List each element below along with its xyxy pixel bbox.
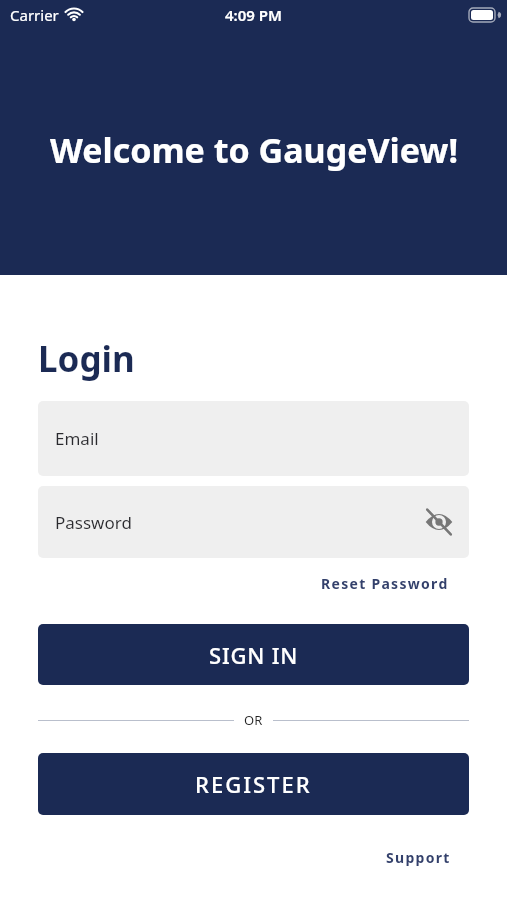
- button[interactable]: [425, 509, 453, 535]
- staticText: SIGN IN: [209, 640, 299, 670]
- button[interactable]: Reset Password: [321, 574, 449, 593]
- staticText: Login: [38, 335, 135, 383]
- staticText: REGISTER: [195, 769, 312, 799]
- staticText: Email: [55, 427, 99, 450]
- button[interactable]: Support: [386, 848, 451, 867]
- staticText: 4:09 PM: [225, 5, 282, 25]
- staticText: Password: [55, 511, 132, 534]
- staticText: OR: [244, 711, 263, 729]
- staticText: Carrier: [10, 5, 59, 25]
- button[interactable]: REGISTER: [38, 753, 469, 815]
- button[interactable]: SIGN IN: [38, 624, 469, 685]
- button[interactable]: Email: [38, 401, 469, 476]
- button[interactable]: Password: [38, 486, 469, 558]
- staticText: Welcome to GaugeView!: [50, 127, 458, 173]
